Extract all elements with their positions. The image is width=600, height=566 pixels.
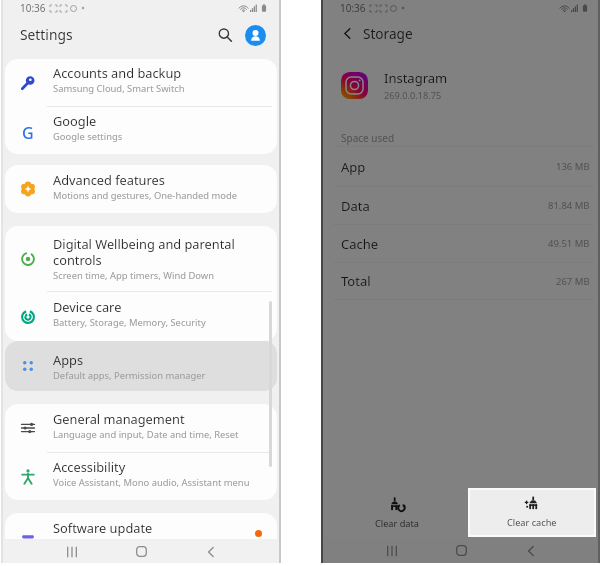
staticText: App [341,158,366,176]
button[interactable]: Data [341,187,590,224]
button[interactable]: Back [496,538,566,563]
staticText: Clear data [375,517,419,530]
button[interactable]: Accounts and backup [5,59,277,106]
staticText: Space used [341,131,395,145]
button[interactable]: Device care [5,292,277,341]
staticText: 267 MB [556,275,590,288]
button[interactable]: General management [5,404,277,452]
staticText: Device care [53,298,122,315]
staticText: Download and install [53,537,146,550]
button[interactable]: Advanced features [5,165,277,213]
button[interactable]: Back [336,22,358,44]
button[interactable]: Cache [341,225,590,262]
staticText: Digital Wellbeing and parental controls [53,235,235,268]
staticText: Battery, Storage, Memory, Security [53,316,206,329]
button[interactable]: Search [212,22,238,48]
staticText: Google [53,112,97,129]
button[interactable]: Recents [37,539,107,564]
staticText: Motions and gestures, One-handed mode [53,189,238,202]
staticText: Apps [53,351,84,368]
button[interactable]: Recents [357,538,426,563]
staticText: Default apps, Permission manager [53,369,206,382]
button[interactable]: Account [242,22,268,48]
staticText: Data [341,197,370,215]
button[interactable]: Software update [5,513,277,561]
staticText: Voice Assistant, Mono audio, Assistant m… [53,476,250,489]
staticText: Samsung Cloud, Smart Switch [53,82,185,95]
staticText: Clear cache [507,516,557,529]
button[interactable]: Back [176,539,245,564]
button[interactable]: G [5,107,277,154]
staticText: 269.0.0.18.75 [384,89,442,102]
staticText: 136 MB [556,160,590,173]
button[interactable]: Digital Wellbeing and parental controls [5,226,277,291]
staticText: 10:36 [20,1,46,15]
staticText: Google settings [53,130,123,143]
button[interactable]: Accessibility [5,453,277,500]
staticText: 10:36 [340,1,366,15]
staticText: Software update [53,519,153,536]
staticText: Instagram [384,69,448,87]
staticText: 49.51 MB [548,237,590,250]
button[interactable]: Total [341,263,590,299]
button[interactable]: App [341,147,590,186]
button[interactable]: Apps [5,341,277,391]
staticText: 81.84 MB [548,199,590,212]
staticText: G [22,122,34,140]
staticText: General management [53,410,185,427]
staticText: Advanced features [53,171,165,188]
button[interactable]: Home [426,538,496,563]
staticText: Accessibility [53,458,126,475]
button[interactable]: Clear cache [470,490,594,535]
staticText: Screen time, App timers, Wind Down [53,269,214,282]
staticText: Settings [20,25,73,44]
staticText: Storage [363,24,413,43]
staticText: Cache [341,235,379,253]
staticText: Language and input, Date and time, Reset [53,428,239,441]
staticText: Accounts and backup [53,64,182,81]
button[interactable]: Clear data [333,488,461,536]
button[interactable]: Home [107,539,176,564]
staticText: Total [341,272,371,290]
